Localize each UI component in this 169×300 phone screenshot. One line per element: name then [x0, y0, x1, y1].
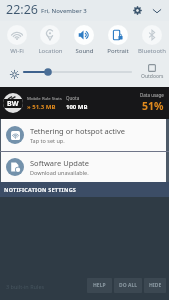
button[interactable]: Outdoors: [140, 64, 164, 80]
staticText: Quota: [66, 95, 80, 101]
staticText: 3 built-in Rules: [6, 283, 45, 290]
staticText: NOTIFICATION SETTINGS: [4, 186, 77, 193]
staticText: Download unavailable.: [30, 169, 89, 176]
staticText: HIDE: [149, 282, 162, 289]
button[interactable]: Bluetooth: [135, 21, 169, 55]
staticText: 22:26: [6, 1, 38, 18]
staticText: Tap to set up.: [30, 137, 65, 144]
staticText: » 51.3 MB: [27, 103, 56, 111]
button[interactable]: Sound: [67, 21, 101, 55]
button[interactable]: HELP: [87, 278, 112, 293]
staticText: Bluetooth: [138, 47, 166, 55]
button[interactable]: Settings: [128, 1, 147, 20]
staticText: Software Update: [30, 158, 90, 168]
button[interactable]: Brightness: [7, 67, 21, 81]
staticText: Wi-Fi: [10, 47, 24, 55]
button[interactable]: Location: [33, 21, 67, 55]
button[interactable]: Wi-Fi: [0, 21, 33, 55]
staticText: Sound: [75, 47, 94, 55]
staticText: HELP: [93, 282, 106, 289]
staticText: Location: [38, 47, 63, 55]
staticText: Data usage: [140, 92, 164, 98]
staticText: 51%: [142, 99, 164, 113]
button[interactable]: Software Update: [1, 152, 166, 182]
button[interactable]: Tethering or hotspot active: [1, 119, 166, 151]
button[interactable]: HIDE: [144, 278, 166, 293]
button[interactable]: DO ALL: [114, 278, 142, 293]
button[interactable]: Collapse: [147, 1, 166, 20]
staticText: Portrait: [107, 47, 129, 55]
staticText: Mobile Rule Stats: [27, 95, 62, 101]
button[interactable]: Portrait: [101, 21, 135, 55]
button[interactable]: NOTIFICATION SETTINGS: [0, 182, 169, 197]
staticText: BW: [7, 99, 19, 108]
button[interactable]: Brightness slider: [22, 66, 133, 78]
staticText: DO ALL: [119, 282, 137, 289]
staticText: 100 MB: [66, 103, 88, 111]
staticText: Outdoors: [141, 73, 164, 80]
staticText: Fri, November 3: [41, 7, 87, 15]
staticText: Tethering or hotspot active: [30, 126, 126, 136]
